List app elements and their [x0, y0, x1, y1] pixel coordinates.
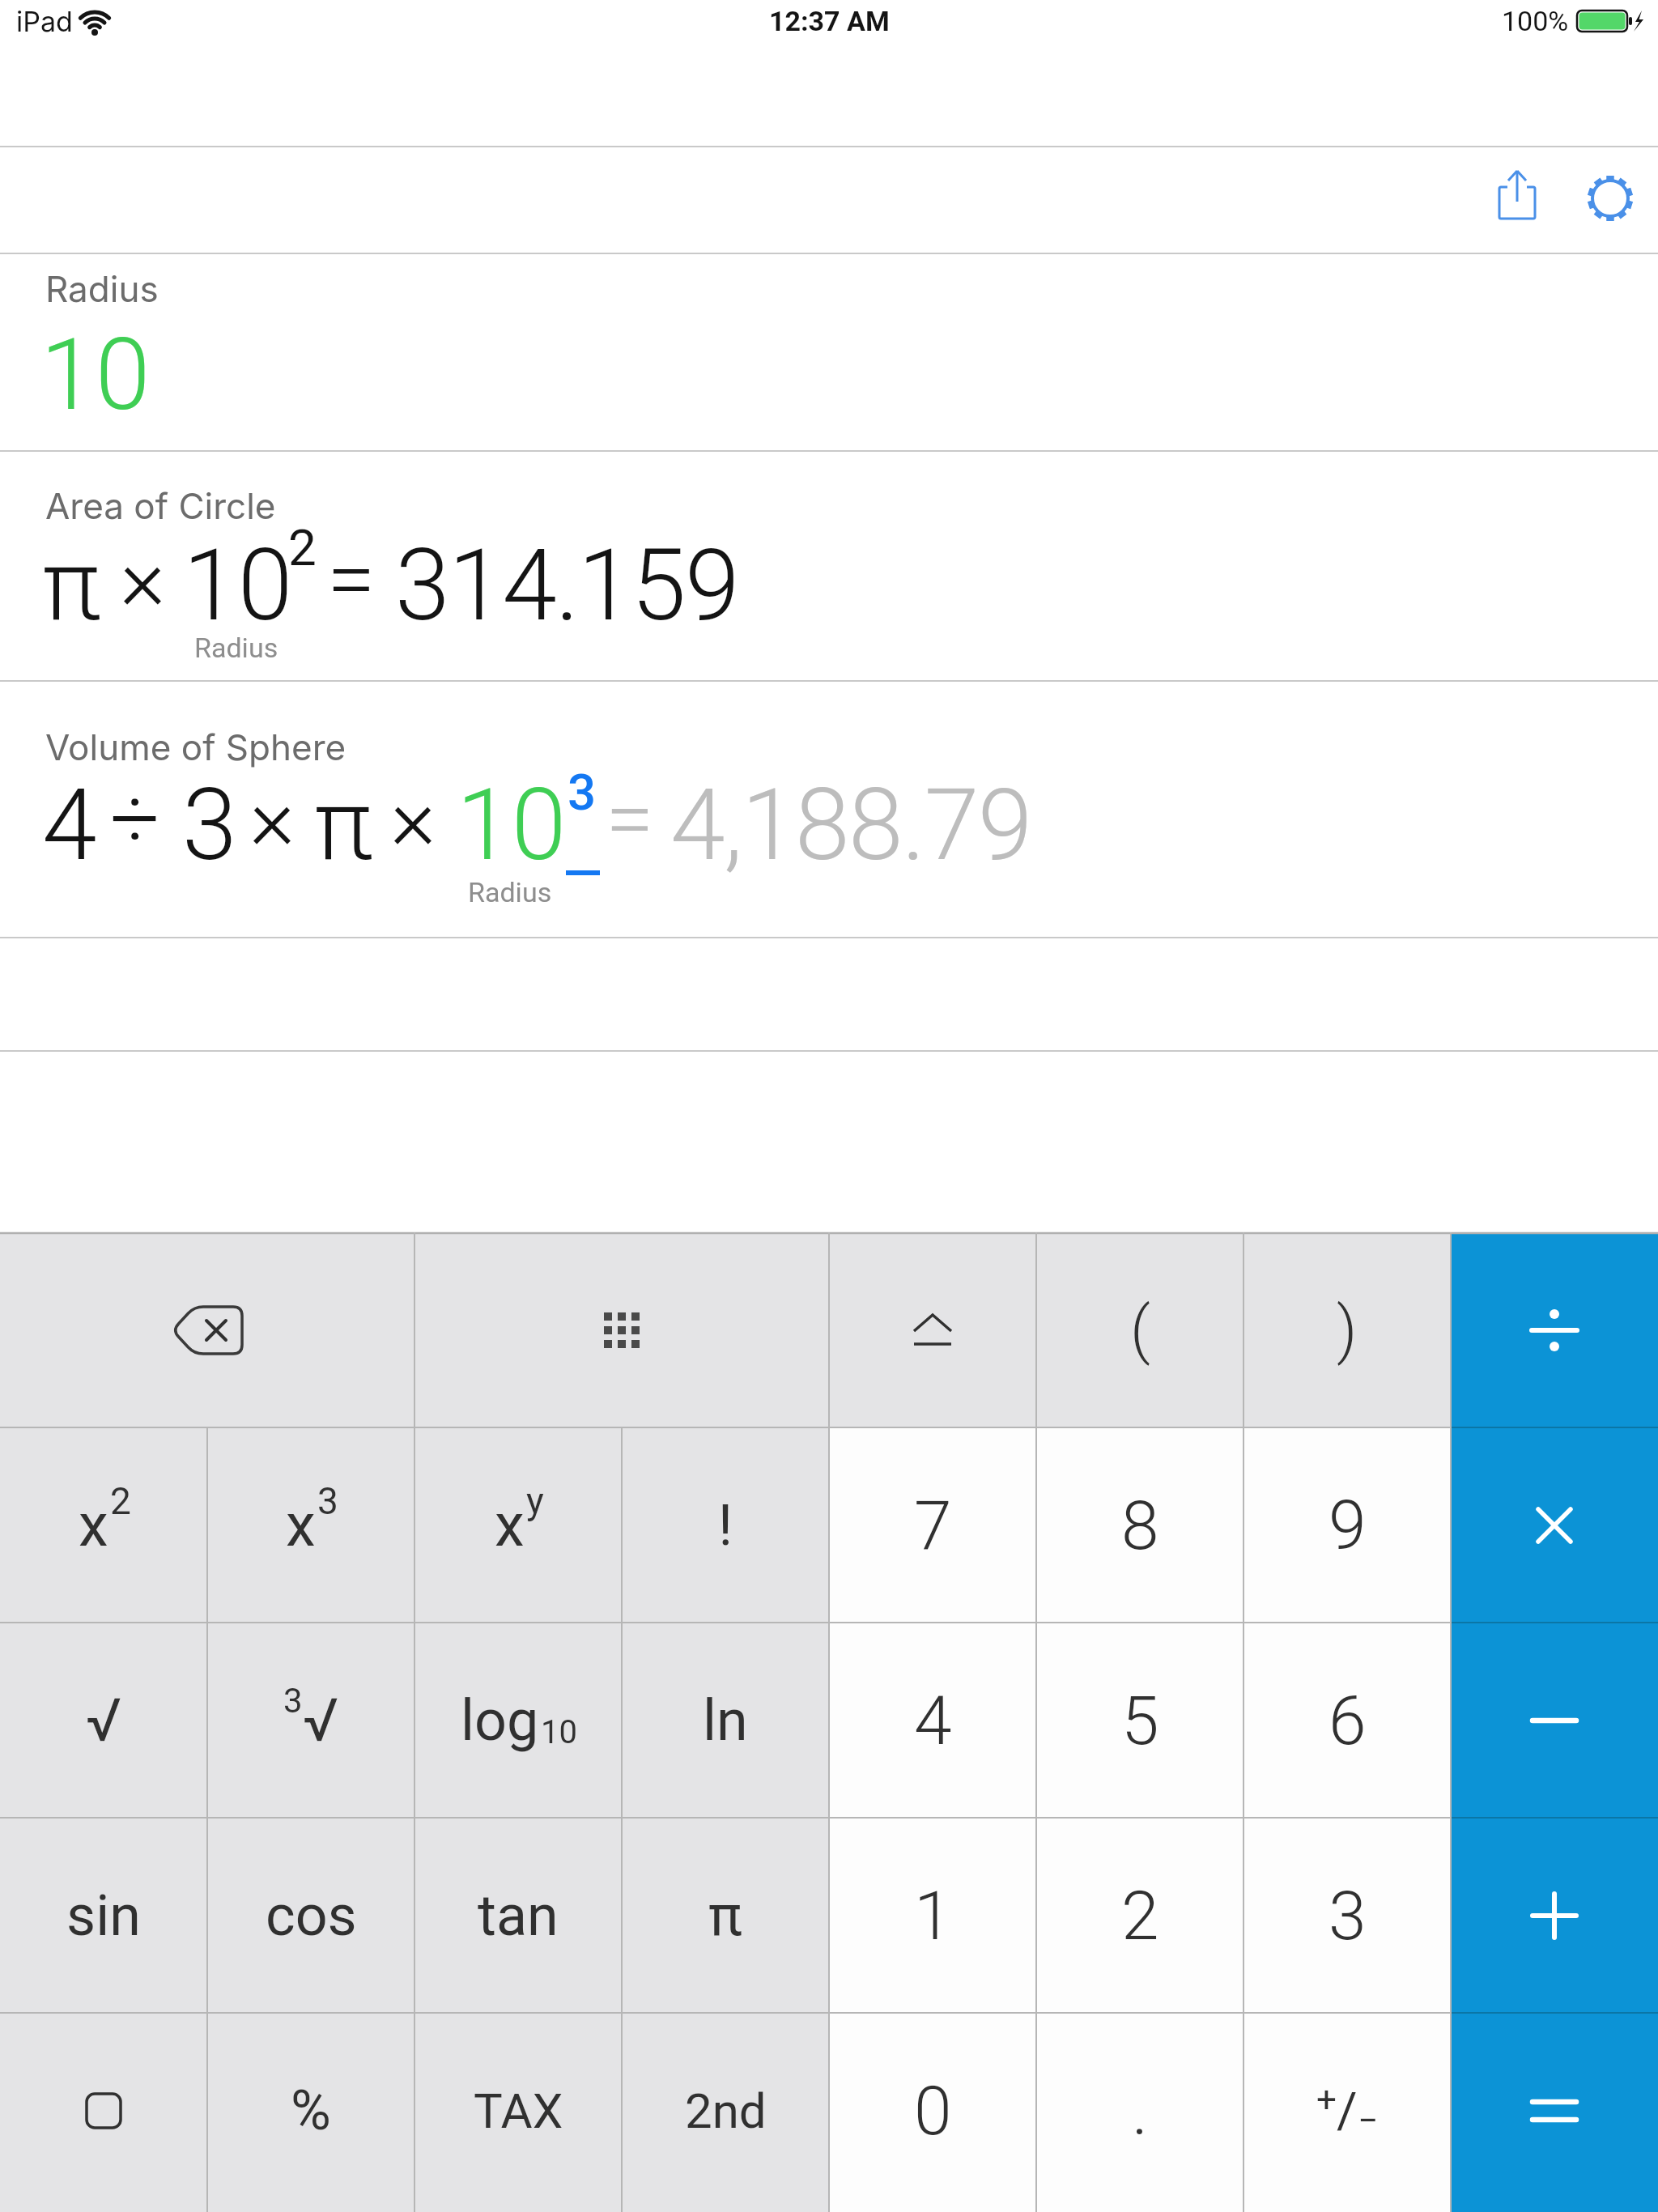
button[interactable]: √: [0, 1623, 207, 1818]
staticText: √: [303, 1685, 339, 1755]
staticText: 9: [1329, 1486, 1367, 1565]
button[interactable]: %: [207, 2013, 414, 2208]
staticText: 10: [457, 768, 567, 883]
staticText: π: [708, 1882, 742, 1949]
button[interactable]: x: [207, 1427, 414, 1623]
staticText: 100%: [1502, 5, 1569, 37]
staticText: !: [718, 1492, 733, 1559]
staticText: 2: [288, 518, 317, 577]
button[interactable]: 8: [1036, 1427, 1243, 1623]
staticText: x: [79, 1490, 108, 1560]
staticText: ): [1337, 1293, 1358, 1367]
button[interactable]: log: [414, 1623, 622, 1818]
button[interactable]: x: [414, 1427, 622, 1623]
staticText: 5: [1121, 1681, 1159, 1760]
staticText: π: [42, 528, 101, 644]
staticText: ÷: [110, 768, 160, 870]
staticText: sin: [66, 1882, 141, 1949]
staticText: 4: [914, 1681, 952, 1760]
staticText: 3: [317, 1479, 338, 1523]
staticText: Radius: [194, 632, 278, 664]
staticText: /: [1337, 2081, 1358, 2140]
staticText: ×: [120, 528, 166, 631]
staticText: +: [1316, 2078, 1337, 2121]
staticText: TAX: [474, 2082, 563, 2139]
staticText: ×: [390, 768, 436, 870]
staticText: 2: [110, 1479, 131, 1523]
button[interactable]: π: [622, 1818, 829, 2013]
button[interactable]: 5: [1036, 1623, 1243, 1818]
staticText: log: [461, 1687, 539, 1754]
button[interactable]: !: [622, 1427, 829, 1623]
staticText: 10: [40, 317, 151, 433]
button[interactable]: TAX: [414, 2013, 622, 2208]
staticText: 4: [42, 768, 97, 883]
staticText: 314.159: [395, 528, 738, 644]
button[interactable]: [829, 1232, 1036, 1427]
staticText: y: [526, 1479, 544, 1523]
staticText: 3: [182, 768, 237, 883]
staticText: .: [1132, 2071, 1149, 2150]
button[interactable]: 3: [1243, 1818, 1451, 2013]
staticText: Area of Circle: [45, 484, 276, 527]
staticText: 2nd: [685, 2082, 767, 2139]
staticText: 12:37 AM: [769, 5, 890, 37]
button[interactable]: [1581, 167, 1641, 232]
staticText: −: [1358, 2099, 1379, 2142]
staticText: =: [327, 528, 376, 631]
button[interactable]: 1: [829, 1818, 1036, 2013]
staticText: √: [86, 1685, 122, 1755]
button[interactable]: 2: [1036, 1818, 1243, 2013]
button[interactable]: x: [0, 1427, 207, 1623]
staticText: %: [291, 2078, 331, 2143]
button[interactable]: [0, 2013, 207, 2208]
staticText: iPad: [16, 5, 73, 38]
button[interactable]: [0, 1232, 414, 1427]
button[interactable]: (: [1036, 1232, 1243, 1427]
button[interactable]: 7: [829, 1427, 1036, 1623]
staticText: (: [1130, 1293, 1150, 1367]
staticText: cos: [266, 1882, 357, 1949]
staticText: 10: [183, 528, 293, 644]
staticText: Radius: [45, 267, 159, 310]
button[interactable]: 3: [207, 1623, 414, 1818]
staticText: ln: [703, 1687, 748, 1754]
staticText: Volume of Sphere: [45, 725, 346, 768]
staticText: =: [606, 768, 654, 870]
button[interactable]: 0: [829, 2013, 1036, 2208]
staticText: x: [286, 1490, 316, 1560]
staticText: 3: [283, 1681, 303, 1721]
button[interactable]: sin: [0, 1818, 207, 2013]
staticText: 4,188.79: [670, 768, 1031, 883]
staticText: 6: [1329, 1681, 1367, 1760]
button[interactable]: .: [1036, 2013, 1243, 2208]
staticText: 0: [914, 2071, 952, 2150]
button[interactable]: 6: [1243, 1623, 1451, 1818]
staticText: x: [495, 1490, 525, 1560]
staticText: π: [314, 768, 373, 883]
button[interactable]: 2nd: [622, 2013, 829, 2208]
button[interactable]: 4: [829, 1623, 1036, 1818]
button[interactable]: 9: [1243, 1427, 1451, 1623]
staticText: 7: [914, 1486, 952, 1565]
button[interactable]: [1451, 1818, 1658, 2013]
button[interactable]: [414, 1232, 829, 1427]
button[interactable]: ln: [622, 1623, 829, 1818]
button[interactable]: [1486, 160, 1546, 225]
staticText: 3: [1329, 1876, 1367, 1955]
staticText: 8: [1121, 1486, 1159, 1565]
button[interactable]: +: [1243, 2013, 1451, 2208]
staticText: 3: [568, 763, 597, 822]
button[interactable]: cos: [207, 1818, 414, 2013]
staticText: ×: [249, 768, 295, 870]
staticText: Radius: [468, 876, 552, 908]
button[interactable]: [1451, 1232, 1658, 1427]
staticText: tan: [478, 1882, 559, 1949]
button[interactable]: [1451, 2013, 1658, 2208]
button[interactable]: tan: [414, 1818, 622, 2013]
staticText: 2: [1121, 1876, 1159, 1955]
staticText: 10: [541, 1713, 577, 1751]
button[interactable]: ): [1243, 1232, 1451, 1427]
button[interactable]: [1451, 1623, 1658, 1818]
button[interactable]: [1451, 1427, 1658, 1623]
